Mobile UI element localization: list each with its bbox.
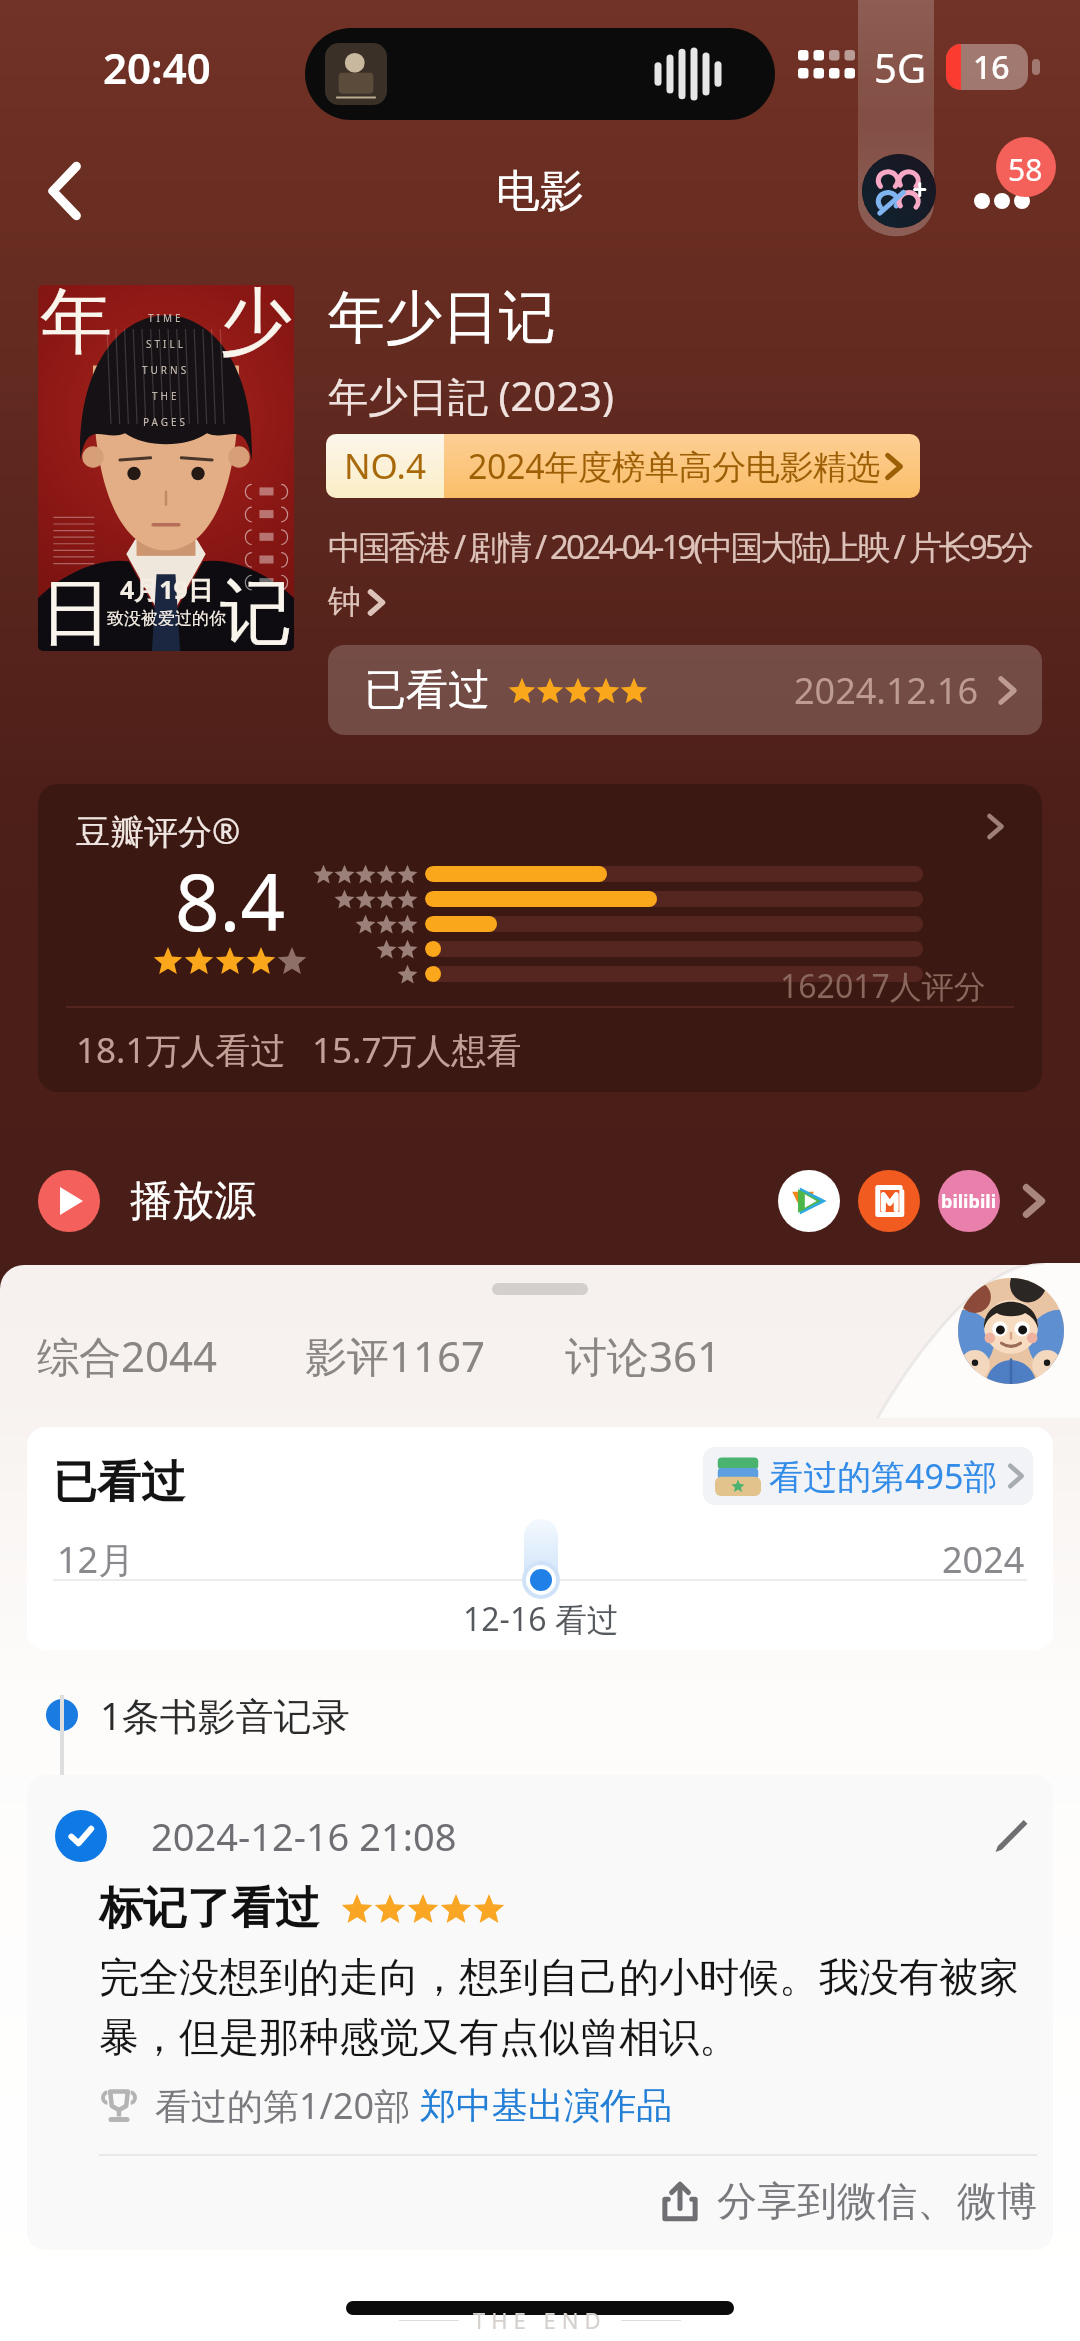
staticText: TURNS — [142, 363, 190, 377]
staticText: 12-16 看过 — [463, 1597, 619, 1641]
staticText: 12月 — [57, 1535, 135, 1584]
staticText: 58 — [1008, 149, 1043, 190]
button[interactable]: 影评1167 — [305, 1327, 486, 1384]
button[interactable]: NO.4 — [326, 434, 920, 498]
staticText: NO.4 — [344, 442, 426, 490]
button[interactable]: 讨论361 — [565, 1327, 722, 1384]
staticText: 20:40 — [103, 39, 211, 96]
staticText: 已看过 — [364, 664, 490, 717]
staticText: 年 — [40, 285, 112, 368]
button[interactable]: 播放源 — [38, 1146, 1046, 1256]
staticText: bilibili — [941, 1189, 997, 1214]
staticText: 年少日記 (2023) — [328, 368, 614, 423]
staticText: 2024.12.16 — [794, 666, 979, 715]
staticText: 16 — [973, 45, 1010, 89]
staticText: 电影 — [496, 164, 584, 219]
staticText: 记 — [220, 568, 292, 651]
staticText: PAGES — [143, 415, 189, 429]
button[interactable]: Edit — [983, 1809, 1037, 1863]
staticText: 18.1万人看过 — [76, 1026, 286, 1074]
button[interactable]: Back — [22, 148, 108, 234]
staticText: 15.7万人想看 — [312, 1026, 522, 1074]
staticText: THE END — [473, 2305, 607, 2335]
staticText: 2024年度榜单高分电影精选 — [468, 443, 881, 489]
staticText: 2024 — [942, 1535, 1025, 1584]
button[interactable]: 看过的第495部 — [715, 1447, 1025, 1505]
button[interactable]: Campaign — [862, 154, 936, 228]
staticText: 钟 — [328, 581, 361, 623]
staticText: 看过的第495部 — [769, 1453, 998, 1499]
staticText: 4月19日 — [120, 572, 213, 606]
staticText: 郑中基出演作品 — [420, 2083, 672, 2128]
staticText: 豆瓣评分® — [76, 808, 241, 854]
staticText: 2024-12-16 21:08 — [151, 1810, 457, 1862]
staticText: 标记了看过 — [99, 1881, 319, 1936]
staticText: 5G — [874, 40, 926, 94]
staticText: 播放源 — [130, 1175, 256, 1228]
staticText: 162017人评分 — [780, 964, 986, 1008]
staticText: 中国香港 / 剧情 / 2024-04-19(中国大陆)上映 / 片长95分 — [328, 524, 1031, 569]
button[interactable]: More options — [952, 141, 1052, 241]
button[interactable]: 分享到微信、微博 — [659, 2176, 1037, 2226]
staticText: STILL — [146, 337, 186, 351]
staticText: 少 — [220, 285, 292, 368]
staticText: 年少日记 — [328, 282, 556, 354]
staticText: 日 — [40, 568, 112, 651]
staticText: THE — [152, 389, 180, 403]
staticText: 8.4 — [175, 848, 286, 954]
staticText: 分享到微信、微博 — [717, 2176, 1037, 2226]
button[interactable]: 综合2044 — [37, 1327, 218, 1384]
staticText: 1条书影音记录 — [100, 1689, 350, 1741]
staticText: 已看过 — [53, 1455, 185, 1510]
button[interactable]: 已看过 — [328, 645, 1042, 735]
button[interactable]: 豆瓣评分® — [38, 784, 1042, 1092]
staticText: 致没被爱过的你 — [107, 608, 226, 629]
staticText: 看过的第1/20部 — [155, 2081, 420, 2130]
button[interactable]: Profile — [958, 1278, 1064, 1384]
staticText: 完全没想到的走向，想到自己的小时候。我没有被家暴，但是那种感觉又有点似曾相识。 — [99, 1952, 1037, 2063]
staticText: TIME — [148, 311, 184, 325]
